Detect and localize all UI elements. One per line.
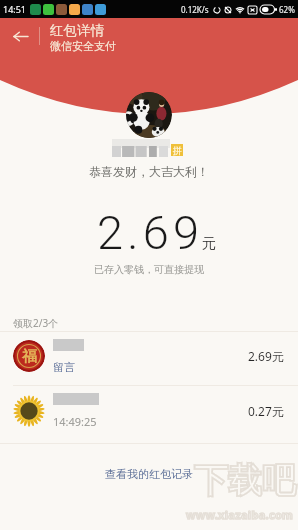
staticText: 查看我的红包记录 (105, 467, 193, 481)
staticText: 2.69元 (248, 348, 284, 364)
staticText: 元 (202, 235, 216, 253)
staticText: 14:51 (3, 3, 27, 15)
staticText: 已存入零钱，可直接提现 (0, 263, 298, 276)
button[interactable]: 福 (0, 328, 298, 384)
staticText: 14:49:25 (53, 414, 97, 429)
staticText: 0.27元 (248, 403, 284, 419)
staticText: 恭喜发财，大吉大利！ (0, 164, 298, 179)
staticText: 红包详情 (50, 22, 104, 39)
staticText: 下载吧 (194, 459, 296, 502)
button[interactable]: 14:49:25 (0, 383, 298, 439)
button[interactable]: 查看我的红包记录 (95, 464, 203, 484)
staticText: 微信安全支付 (50, 39, 116, 53)
staticText: 福 (22, 347, 37, 366)
staticText: www.xiazaiba.com (186, 507, 294, 522)
staticText: 62% (279, 4, 295, 15)
staticText: 留言 (53, 360, 75, 374)
staticText: 2.69 (97, 205, 204, 260)
staticText: 0.12K/s (181, 4, 209, 15)
staticText: 领取2/3个 (13, 316, 59, 330)
staticText: 拼 (173, 145, 182, 156)
button[interactable]: Back (6, 22, 34, 50)
